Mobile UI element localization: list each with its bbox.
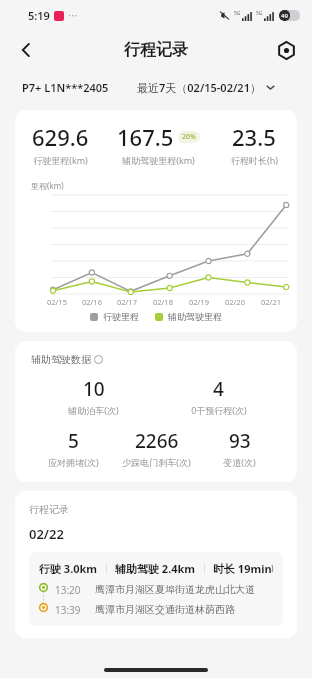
staticText: 02/16	[82, 297, 102, 307]
staticText: 0干预行程(次)	[191, 404, 247, 416]
staticText: 行程时长(h)	[231, 154, 278, 166]
staticText: 5:19	[28, 8, 50, 23]
staticText: 2266	[135, 428, 179, 454]
staticText: 02/15	[47, 297, 67, 307]
staticText: 10	[83, 376, 105, 402]
staticText: 辅助驾驶里程	[168, 311, 222, 322]
staticText: 变道(次)	[223, 456, 256, 468]
staticText: 行程记录	[29, 503, 69, 516]
staticText: 02/19	[189, 297, 209, 307]
staticText: 13:20	[55, 583, 89, 597]
staticText: 应对拥堵(次)	[48, 456, 99, 468]
staticText: 行程记录	[124, 40, 188, 60]
staticText: 辅助驾驶数据	[31, 353, 91, 366]
staticText: 行驶里程	[103, 311, 139, 322]
staticText: 02/22	[29, 525, 64, 543]
button[interactable]: Back	[8, 32, 44, 68]
staticText: 辅助泊车(次)	[68, 404, 119, 416]
staticText: 5G	[234, 10, 241, 17]
staticText: 行驶里程(km)	[33, 154, 88, 166]
staticText: 鹰潭市月湖区交通街道林荫西路	[95, 603, 235, 616]
staticText: 02/21	[261, 297, 281, 307]
button[interactable]: P7+ L1N***2405	[22, 80, 109, 95]
staticText: 辅助驾驶 2.4km	[115, 561, 196, 576]
staticText: 最近7天（02/15-02/21）	[137, 80, 261, 95]
staticText: 23.5	[232, 122, 276, 152]
staticText: 5	[68, 428, 79, 454]
staticText: 629.6	[32, 122, 89, 152]
button[interactable]: 最近7天（02/15-02/21）	[137, 80, 275, 95]
staticText: 4	[213, 376, 224, 402]
button[interactable]: Settings	[268, 32, 304, 68]
staticText: 5G	[256, 10, 263, 17]
staticText: 02/17	[117, 297, 137, 307]
staticText: 93	[229, 428, 251, 454]
staticText: 26%	[182, 132, 196, 142]
staticText: 时长 19min	[213, 561, 272, 576]
staticText: 02/18	[153, 297, 173, 307]
staticText: 鹰潭市月湖区夏埠街道龙虎山北大道	[95, 583, 255, 596]
staticText: 辅助驾驶里程(km)	[122, 154, 195, 166]
staticText: 少踩电门刹车(次)	[122, 456, 191, 468]
staticText: 13:39	[55, 603, 89, 617]
staticText: 167.5	[117, 122, 174, 152]
staticText: 49	[281, 12, 288, 20]
staticText: 02/20	[225, 297, 245, 307]
button[interactable]: 行驶 3.0km	[29, 552, 283, 626]
staticText: 行驶 3.0km	[39, 561, 98, 576]
staticText: 里程(km)	[31, 180, 64, 191]
staticText: ⋯	[68, 10, 78, 22]
